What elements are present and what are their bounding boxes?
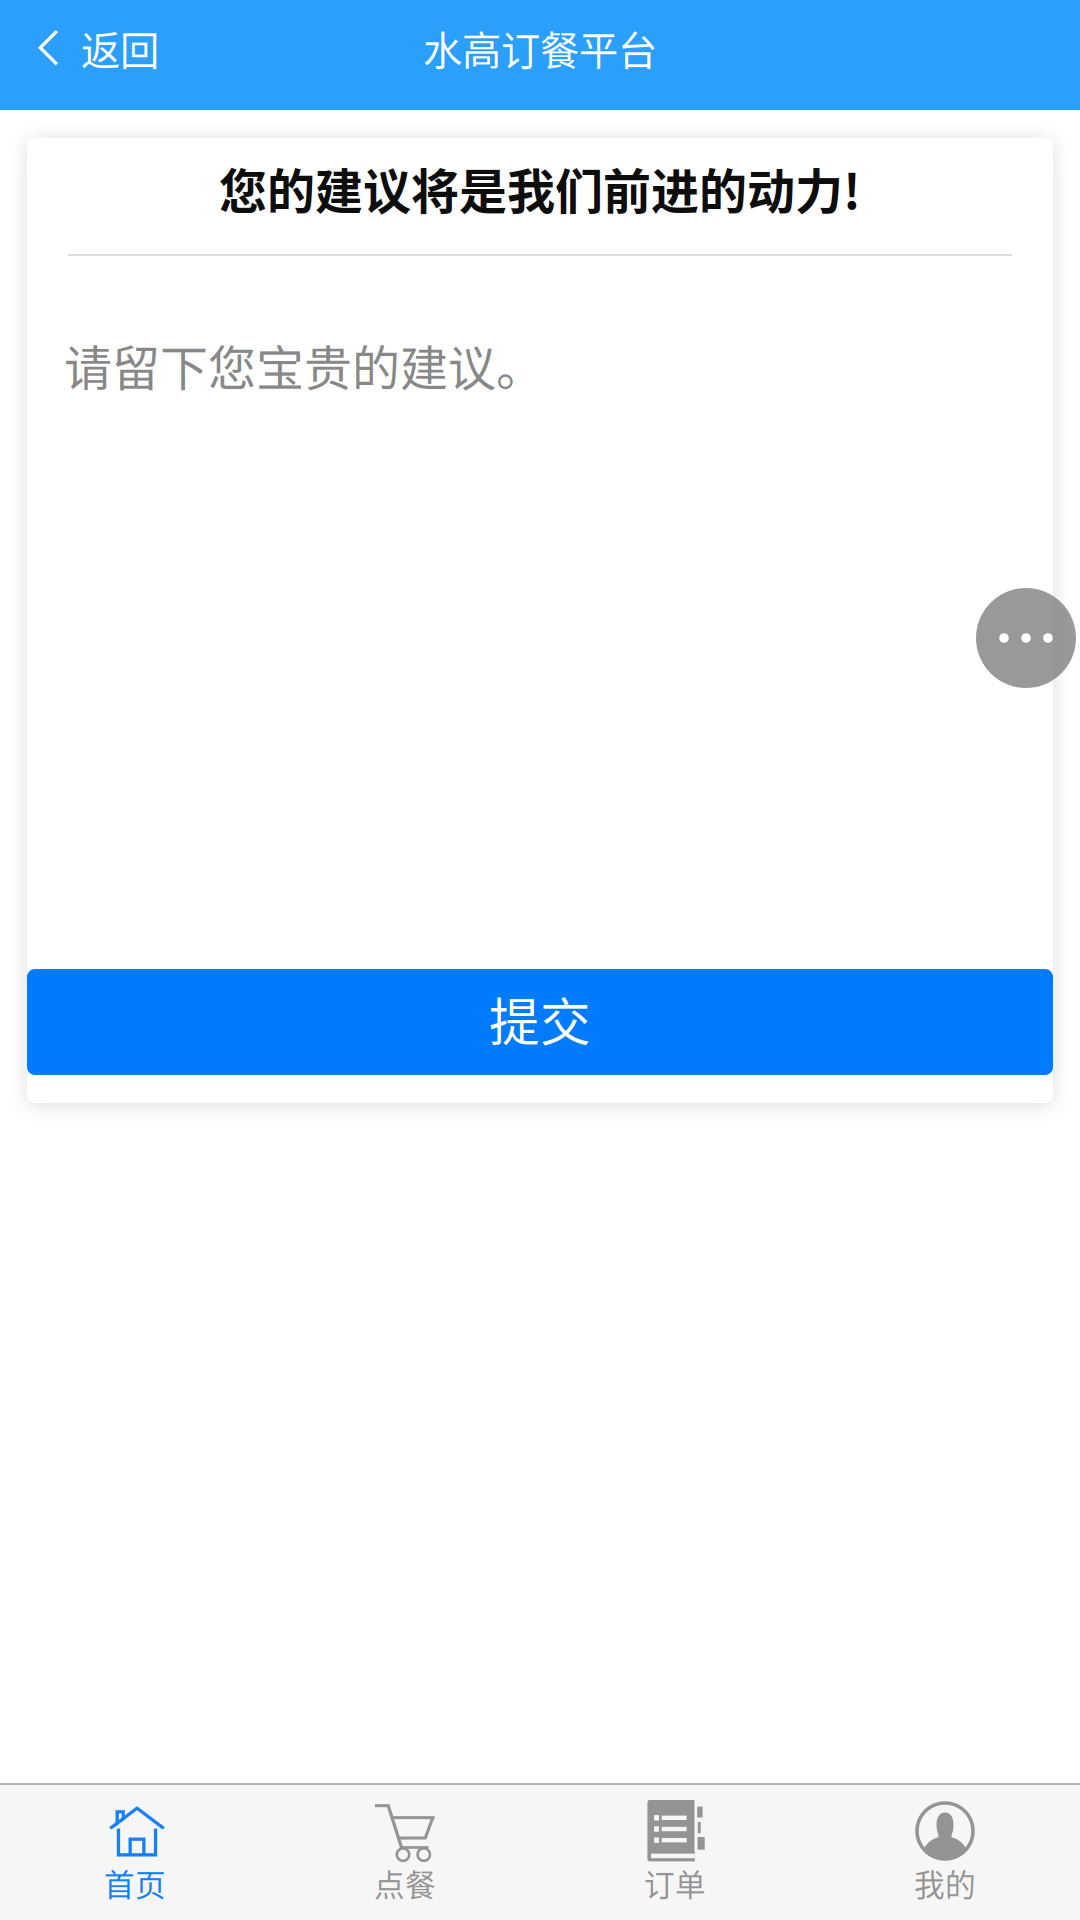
button[interactable]: 点餐 [270,1785,540,1920]
staticText: 点餐 [374,1861,436,1905]
button[interactable]: 返回 [0,0,179,110]
button[interactable]: More options [976,588,1076,688]
button[interactable]: 订单 [540,1785,810,1920]
staticText: 请留下您宝贵的建议。 [64,330,544,399]
staticText: 您的建议将是我们前进的动力! [219,153,861,223]
staticText: 水高订餐平台 [423,19,657,76]
button[interactable]: 我的 [810,1785,1080,1920]
button[interactable]: 首页 [0,1785,270,1920]
staticText: 首页 [104,1861,166,1905]
staticText: 我的 [914,1861,976,1905]
staticText: 订单 [644,1861,706,1905]
staticText: 提交 [489,982,591,1056]
staticText: 返回 [81,19,159,76]
button[interactable]: 提交 [27,969,1053,1075]
